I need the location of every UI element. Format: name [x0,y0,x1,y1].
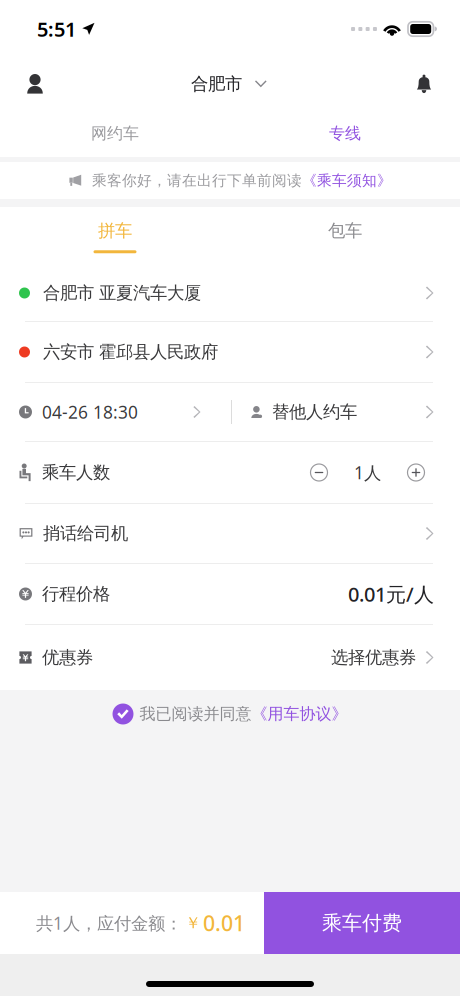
staticText: 我已阅读并同意 [139,704,251,724]
button[interactable]: Decrease passengers [310,463,328,481]
staticText: 专线 [329,124,361,143]
staticText: 5:51 [37,16,76,42]
staticText: 捎话给司机 [43,523,128,544]
button[interactable]: 专线 [230,110,460,157]
button[interactable]: 拼车 [0,207,230,265]
staticText: ￥ [185,913,201,933]
staticText: 乘车人数 [42,462,110,483]
staticText: 乘车付费 [322,911,402,935]
button[interactable]: Increase passengers [407,463,425,481]
button[interactable]: 包车 [230,207,460,265]
staticText: 包车 [328,220,362,241]
staticText: 选择优惠券 [331,647,416,668]
button[interactable]: 替他人约车 [232,383,460,441]
staticText: 合肥市 亚夏汽车大厦 [43,282,201,304]
staticText: 优惠券 [42,647,93,668]
button[interactable]: 捎话给司机 [0,504,460,563]
staticText: 1人 [354,461,381,484]
button[interactable]: 04-26 18:30 [0,383,231,441]
staticText: 合肥市 [191,73,242,95]
staticText: 《乘车须知》 [302,171,392,189]
staticText: 《用车协议》 [251,704,347,724]
button[interactable]: 合肥市 亚夏汽车大厦 [0,265,460,321]
button[interactable]: 网约车 [0,110,230,157]
staticText: 替他人约车 [272,401,357,423]
staticText: 04-26 18:30 [42,400,138,423]
button[interactable]: 我已阅读并同意 [0,701,460,727]
button[interactable]: 六安市 霍邱县人民政府 [0,322,460,382]
staticText: 拼车 [98,220,132,241]
staticText: 六安市 霍邱县人民政府 [43,341,218,363]
button[interactable]: 乘车付费 [264,892,460,954]
staticText: 0.01元/人 [348,581,434,607]
staticText: 网约车 [91,124,139,143]
button[interactable]: 优惠券 [0,625,460,690]
staticText: 乘客你好，请在出行下单前阅读 [92,171,302,189]
staticText: 共1人，应付金额： [36,911,182,934]
staticText: 行程价格 [42,583,110,605]
button[interactable]: Profile [0,58,70,110]
button[interactable]: 合肥市 [191,58,267,110]
button[interactable]: 乘客你好，请在出行下单前阅读 [0,162,460,199]
button[interactable]: Notifications [388,58,460,110]
staticText: 0.01 [203,909,245,937]
